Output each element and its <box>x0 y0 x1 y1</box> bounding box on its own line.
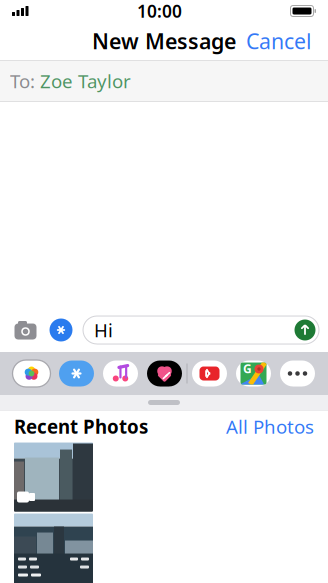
staticText: New Message <box>92 27 236 55</box>
staticText: G <box>243 360 252 376</box>
staticText: Zoe Taylor <box>40 69 131 93</box>
button[interactable]: Cancel <box>236 21 322 61</box>
button[interactable]: Photo 1 <box>14 442 93 511</box>
button[interactable]: More apps <box>275 357 319 389</box>
button[interactable]: YouTube <box>187 357 231 389</box>
button[interactable]: Digital Touch <box>142 357 186 389</box>
staticText: Recent Photos <box>14 414 148 439</box>
staticText: To: <box>10 69 35 93</box>
button[interactable]: Camera <box>12 318 39 342</box>
button[interactable]: App Store <box>48 317 74 343</box>
button[interactable]: Music <box>98 357 142 389</box>
staticText: Hi <box>94 318 113 342</box>
button[interactable]: App Store <box>54 357 98 389</box>
button[interactable]: Photos <box>8 357 54 389</box>
staticText: All Photos <box>226 414 314 439</box>
button[interactable]: Google Maps <box>231 357 275 389</box>
button[interactable]: Photo 2 <box>14 513 93 583</box>
staticText: 10:00 <box>137 0 182 22</box>
button[interactable]: All Photos <box>226 414 314 439</box>
button[interactable]: Zoe Taylor <box>40 69 131 93</box>
button[interactable]: Send <box>294 319 319 340</box>
staticText: Cancel <box>246 27 312 55</box>
